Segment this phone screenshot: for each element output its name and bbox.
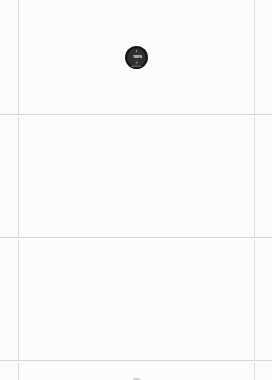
staticText: 100% <box>133 54 143 59</box>
button[interactable]: Watch battery 100 percent <box>125 46 148 69</box>
